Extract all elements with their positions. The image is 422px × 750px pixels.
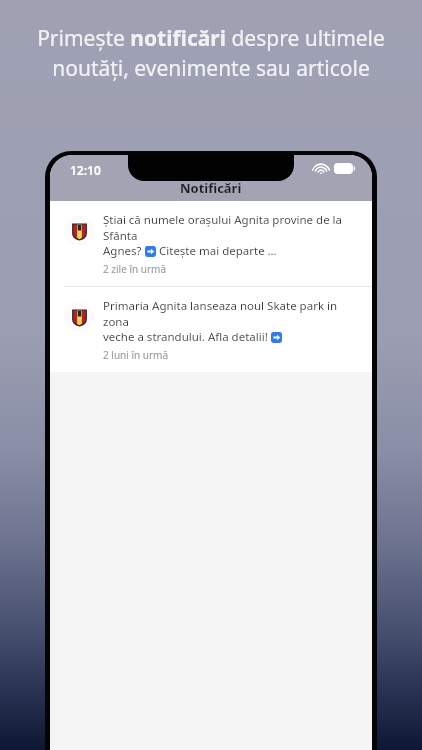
- staticText: Primește notificări despre ultimele nout…: [26, 24, 396, 82]
- staticText: 2 zile în urmă: [103, 262, 167, 276]
- staticText: Notificări: [180, 179, 242, 197]
- staticText: Citește mai departe …: [156, 243, 277, 259]
- other: Agnita: [64, 302, 94, 332]
- staticText: Știai că numele orașului Agnita provine …: [103, 212, 360, 243]
- staticText: 2 luni în urmă: [103, 348, 169, 362]
- staticText: Primaria Agnita lanseaza noul Skate park…: [103, 298, 360, 329]
- other: Agnita: [64, 216, 94, 246]
- staticText: Agnes?: [103, 243, 145, 259]
- button[interactable]: Agnita: [50, 287, 372, 372]
- staticText: 12:10: [70, 162, 101, 178]
- button[interactable]: Agnita: [50, 201, 372, 286]
- staticText: veche a strandului. Afla detalii!: [103, 329, 271, 345]
